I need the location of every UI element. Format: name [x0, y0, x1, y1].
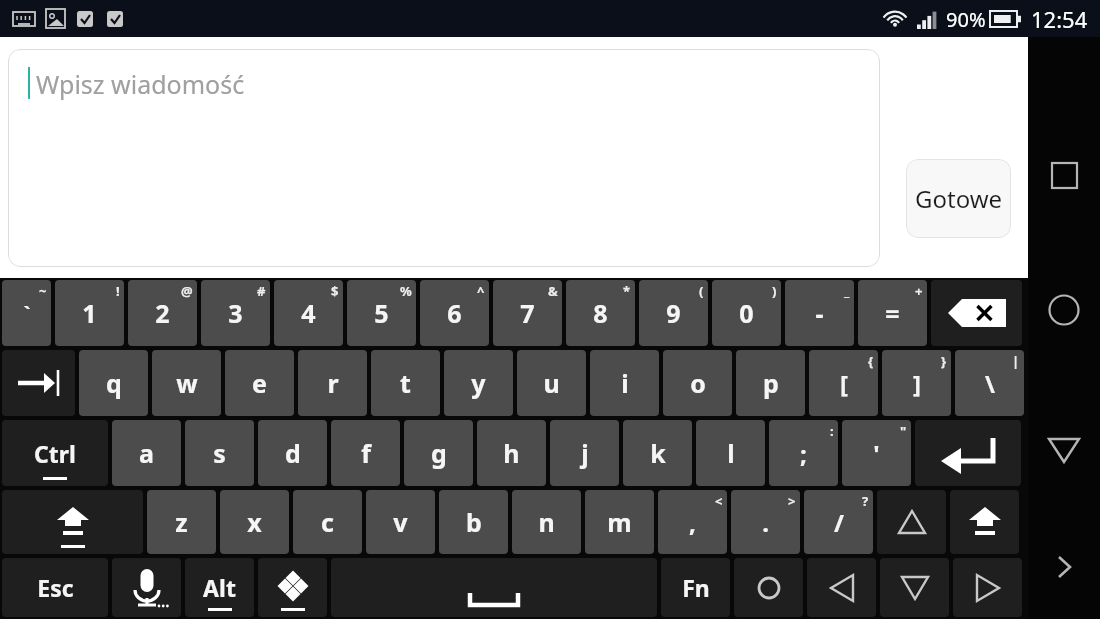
- staticText: 3: [228, 296, 243, 330]
- button[interactable]: 3: [201, 280, 270, 346]
- staticText: `: [23, 300, 31, 327]
- button[interactable]: More: [1043, 546, 1085, 588]
- button[interactable]: p: [736, 350, 805, 416]
- button[interactable]: 7: [493, 280, 562, 346]
- button[interactable]: 0: [712, 280, 781, 346]
- staticText: j: [581, 436, 589, 470]
- button[interactable]: Alt: [185, 558, 254, 617]
- button[interactable]: k: [623, 420, 692, 486]
- button[interactable]: [: [809, 350, 878, 416]
- button[interactable]: z: [147, 490, 216, 554]
- button[interactable]: d: [258, 420, 327, 486]
- staticText: w: [176, 366, 198, 400]
- button[interactable]: Wpisz wiadomość: [8, 49, 880, 267]
- button[interactable]: Esc: [2, 558, 108, 617]
- button[interactable]: 4: [274, 280, 343, 346]
- button[interactable]: 6: [420, 280, 489, 346]
- button[interactable]: t: [371, 350, 440, 416]
- button[interactable]: \: [955, 350, 1024, 416]
- staticText: _: [844, 282, 850, 300]
- staticText: }: [941, 352, 947, 370]
- button[interactable]: 5: [347, 280, 416, 346]
- staticText: d: [285, 436, 301, 470]
- staticText: Fn: [682, 572, 710, 603]
- staticText: ": [900, 422, 907, 440]
- button[interactable]: Recents: [1041, 152, 1087, 198]
- staticText: h: [503, 436, 520, 470]
- button[interactable]: Left: [807, 558, 876, 617]
- button[interactable]: ,: [658, 490, 727, 554]
- staticText: &: [548, 282, 558, 300]
- button[interactable]: g: [404, 420, 473, 486]
- staticText: u: [543, 366, 560, 400]
- staticText: (: [699, 282, 704, 300]
- staticText: x: [247, 505, 262, 539]
- button[interactable]: Fn: [661, 558, 730, 617]
- button[interactable]: m: [585, 490, 654, 554]
- button[interactable]: q: [79, 350, 148, 416]
- button[interactable]: .: [731, 490, 800, 554]
- button[interactable]: ]: [882, 350, 951, 416]
- button[interactable]: Arrow up: [877, 490, 946, 554]
- button[interactable]: Backspace: [931, 280, 1022, 346]
- staticText: #: [257, 282, 266, 300]
- button[interactable]: Back: [1040, 426, 1088, 474]
- staticText: +: [915, 282, 923, 300]
- button[interactable]: b: [439, 490, 508, 554]
- button[interactable]: u: [517, 350, 586, 416]
- button[interactable]: x: [220, 490, 289, 554]
- button[interactable]: f: [331, 420, 400, 486]
- button[interactable]: Gotowe: [906, 159, 1011, 238]
- button[interactable]: Space: [331, 558, 657, 617]
- staticText: a: [139, 436, 154, 470]
- button[interactable]: Shift: [2, 490, 143, 554]
- button[interactable]: h: [477, 420, 546, 486]
- button[interactable]: ': [842, 420, 911, 486]
- button[interactable]: Tab: [2, 350, 75, 416]
- staticText: ,: [689, 506, 696, 539]
- staticText: :: [830, 422, 834, 440]
- button[interactable]: r: [298, 350, 367, 416]
- button[interactable]: Change language: [258, 558, 327, 617]
- button[interactable]: Symbols: [734, 558, 803, 617]
- button[interactable]: /: [804, 490, 873, 554]
- staticText: $: [331, 282, 339, 300]
- button[interactable]: a: [112, 420, 181, 486]
- button[interactable]: Down: [880, 558, 949, 617]
- button[interactable]: Home: [1040, 286, 1088, 334]
- button[interactable]: `: [2, 280, 51, 346]
- button[interactable]: j: [550, 420, 619, 486]
- button[interactable]: i: [590, 350, 659, 416]
- staticText: Alt: [203, 572, 236, 603]
- button[interactable]: w: [152, 350, 221, 416]
- button[interactable]: n: [512, 490, 581, 554]
- staticText: ~: [39, 282, 47, 300]
- staticText: g: [431, 436, 447, 470]
- button[interactable]: c: [293, 490, 362, 554]
- button[interactable]: y: [444, 350, 513, 416]
- button[interactable]: ;: [769, 420, 838, 486]
- button[interactable]: Voice input: [112, 558, 181, 617]
- button[interactable]: Ctrl: [2, 420, 108, 486]
- button[interactable]: 8: [566, 280, 635, 346]
- button[interactable]: e: [225, 350, 294, 416]
- button[interactable]: 9: [639, 280, 708, 346]
- staticText: %: [400, 282, 412, 300]
- staticText: Gotowe: [915, 182, 1003, 215]
- staticText: 5: [374, 296, 389, 330]
- button[interactable]: v: [366, 490, 435, 554]
- button[interactable]: 2: [128, 280, 197, 346]
- button[interactable]: 1: [55, 280, 124, 346]
- button[interactable]: Shift right: [950, 490, 1019, 554]
- button[interactable]: l: [696, 420, 765, 486]
- staticText: Ctrl: [34, 438, 76, 469]
- button[interactable]: o: [663, 350, 732, 416]
- staticText: f: [361, 436, 371, 470]
- staticText: ;: [800, 437, 807, 470]
- staticText: Wpisz wiadomość: [36, 67, 245, 101]
- button[interactable]: -: [785, 280, 854, 346]
- button[interactable]: Enter: [915, 420, 1021, 486]
- button[interactable]: s: [185, 420, 254, 486]
- button[interactable]: =: [858, 280, 927, 346]
- button[interactable]: Right: [953, 558, 1022, 617]
